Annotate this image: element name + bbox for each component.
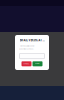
staticText: CANCEL xyxy=(23,63,29,65)
button[interactable]: CANCEL xyxy=(21,61,31,66)
staticText: EMAIL VERIFICATION xyxy=(19,38,44,42)
staticText: just sent to your inbox. xyxy=(19,48,33,50)
staticText: VERIFY xyxy=(35,63,40,65)
button[interactable]: VERIFY xyxy=(32,61,42,66)
staticText: Enter the 6-digit code we xyxy=(19,45,34,47)
